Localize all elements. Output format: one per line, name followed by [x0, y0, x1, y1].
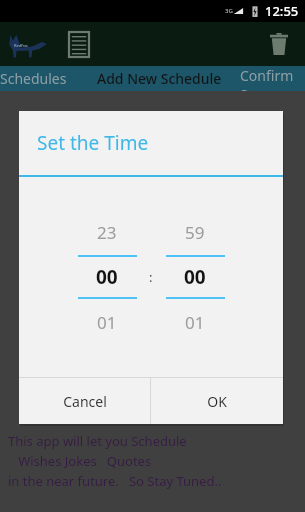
- staticText: in the near future. So Stay Tuned..: [8, 472, 222, 490]
- staticText: RedFox: [14, 43, 28, 48]
- button[interactable]: 01: [76, 305, 138, 339]
- button[interactable]: 00: [76, 257, 138, 297]
- staticText: Set the Time: [37, 130, 149, 156]
- staticText: 01: [185, 311, 205, 334]
- button[interactable]: 23: [76, 215, 138, 249]
- staticText: :: [149, 268, 153, 286]
- staticText: Cancel: [63, 392, 107, 411]
- button[interactable]: 00: [164, 257, 226, 297]
- button[interactable]: Add New Schedule: [87, 66, 232, 91]
- button[interactable]: 59: [164, 215, 226, 249]
- button[interactable]: App logo: [5, 28, 49, 60]
- staticText: 00: [96, 264, 118, 290]
- button[interactable]: Schedules list: [66, 29, 92, 59]
- staticText: Confirm Sc: [240, 66, 297, 91]
- staticText: 01: [97, 311, 117, 334]
- button[interactable]: 01: [164, 305, 226, 339]
- staticText: 12:55: [265, 2, 299, 20]
- staticText: OK: [207, 392, 227, 411]
- staticText: Wishes Jokes Quotes: [8, 452, 152, 470]
- button[interactable]: Delete: [265, 29, 293, 59]
- staticText: 00: [184, 264, 206, 290]
- button[interactable]: Schedules: [0, 66, 77, 91]
- staticText: 3G: [225, 7, 233, 15]
- staticText: This app will let you Schedule: [8, 432, 187, 450]
- staticText: Add New Schedule: [97, 69, 222, 88]
- button[interactable]: Confirm Sc: [232, 66, 305, 91]
- button[interactable]: Cancel: [19, 378, 150, 424]
- staticText: Schedules: [0, 69, 67, 88]
- button[interactable]: OK: [151, 378, 283, 424]
- staticText: 59: [185, 221, 205, 244]
- staticText: 23: [97, 221, 117, 244]
